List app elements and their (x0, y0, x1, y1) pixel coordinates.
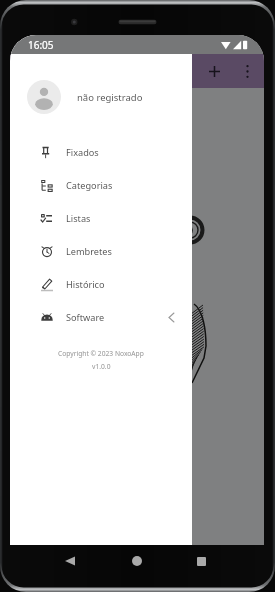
button[interactable]: não registrado (10, 80, 192, 114)
staticText: Categorias (66, 179, 113, 192)
staticText: Fixados (66, 146, 99, 159)
staticText: Copyright © 2023 NoxoApp (58, 349, 144, 358)
button[interactable]: Back (55, 546, 85, 576)
button[interactable]: Listas (10, 202, 192, 235)
button[interactable]: Recent apps (186, 546, 216, 576)
button[interactable]: Histórico (10, 268, 192, 301)
staticText: Software (66, 311, 105, 324)
button[interactable]: Home (122, 546, 152, 576)
staticText: Histórico (66, 278, 105, 291)
staticText: não registrado (77, 91, 143, 104)
button[interactable]: More options (232, 56, 262, 86)
staticText: Lembretes (66, 245, 112, 258)
staticText: Listas (66, 212, 91, 225)
button[interactable]: Fixados (10, 136, 192, 169)
button[interactable]: Software (10, 301, 192, 334)
button[interactable]: Lembretes (10, 235, 192, 268)
staticText: v1.0.0 (92, 362, 111, 371)
staticText: 16:05 (28, 38, 54, 52)
button[interactable]: Add (199, 56, 229, 86)
button[interactable]: Categorias (10, 169, 192, 202)
